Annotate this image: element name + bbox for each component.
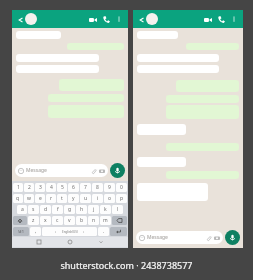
button[interactable]: Received message — [16, 31, 61, 39]
button[interactable]: Contact avatar — [25, 13, 37, 25]
staticText: 7 — [84, 184, 87, 191]
button[interactable]: d — [40, 205, 51, 214]
button[interactable]: Backspace — [112, 216, 127, 225]
staticText: a — [21, 206, 24, 213]
button[interactable]: o — [104, 194, 115, 203]
button[interactable]: , — [30, 227, 41, 236]
staticText: l — [117, 206, 119, 213]
button[interactable]: Record voice message — [110, 163, 125, 178]
button[interactable]: e — [35, 194, 45, 203]
staticText: Message — [147, 234, 168, 241]
button[interactable]: Record voice message — [225, 230, 240, 245]
button[interactable]: Space — [42, 227, 97, 236]
staticText: u — [84, 195, 88, 202]
button[interactable]: a — [17, 205, 27, 214]
staticText: y — [72, 195, 75, 202]
staticText: x — [44, 217, 47, 224]
button[interactable]: More options — [229, 14, 239, 24]
button[interactable]: 7 — [80, 183, 91, 192]
button[interactable]: Back — [137, 15, 146, 24]
button[interactable]: m — [100, 216, 111, 225]
staticText: English(US) — [62, 230, 78, 234]
button[interactable]: c — [52, 216, 63, 225]
button[interactable]: w — [24, 194, 34, 203]
staticText: shutterstock.com · 2438738577 — [60, 259, 193, 271]
button[interactable]: l — [112, 205, 123, 214]
staticText: s — [32, 206, 35, 213]
staticText: v — [68, 217, 71, 224]
button[interactable]: 0 — [116, 183, 127, 192]
button[interactable]: h — [76, 205, 87, 214]
staticText: Message — [26, 167, 47, 174]
button[interactable]: k — [100, 205, 111, 214]
button[interactable]: p — [116, 194, 127, 203]
button[interactable]: q — [13, 194, 23, 203]
staticText: p — [120, 195, 124, 202]
button[interactable]: Received message — [137, 31, 178, 39]
button[interactable]: Voice call — [101, 14, 112, 25]
button[interactable]: 8 — [92, 183, 103, 192]
button[interactable]: Back — [16, 15, 25, 24]
button[interactable]: f — [52, 205, 63, 214]
button[interactable]: t — [57, 194, 67, 203]
staticText: , — [35, 228, 37, 235]
button[interactable]: 2 — [24, 183, 34, 192]
button[interactable]: Recents — [35, 238, 43, 246]
button[interactable]: Video call — [87, 14, 98, 25]
button[interactable]: 6 — [68, 183, 79, 192]
button[interactable]: 3 — [35, 183, 45, 192]
staticText: 6 — [72, 184, 75, 191]
button[interactable]: !#1 — [13, 227, 29, 236]
button[interactable]: Contact avatar — [146, 13, 158, 25]
button[interactable]: u — [80, 194, 91, 203]
button[interactable]: s — [28, 205, 39, 214]
button[interactable]: x — [40, 216, 51, 225]
button[interactable]: 9 — [104, 183, 115, 192]
button[interactable]: i — [92, 194, 103, 203]
staticText: w — [27, 195, 31, 202]
button[interactable]: r — [46, 194, 56, 203]
button[interactable]: v — [64, 216, 75, 225]
button[interactable]: Back — [97, 238, 105, 246]
button[interactable]: Video call — [202, 14, 213, 25]
button[interactable]: 1 — [13, 183, 23, 192]
button[interactable]: Enter — [110, 227, 127, 236]
button[interactable]: . — [98, 227, 109, 236]
button[interactable]: z — [28, 216, 39, 225]
button[interactable]: y — [68, 194, 79, 203]
staticText: n — [92, 217, 96, 224]
staticText: › — [83, 229, 85, 234]
button[interactable]: 5 — [57, 183, 67, 192]
staticText: k — [104, 206, 107, 213]
staticText: f — [57, 206, 59, 213]
button[interactable]: g — [64, 205, 75, 214]
button[interactable]: n — [88, 216, 99, 225]
staticText: t — [61, 195, 63, 202]
button[interactable]: Message — [136, 231, 223, 244]
button[interactable]: Received message — [137, 124, 186, 135]
button[interactable]: Message — [15, 164, 108, 177]
button[interactable]: b — [76, 216, 87, 225]
button[interactable]: Received message — [137, 157, 186, 167]
button[interactable]: Home — [66, 238, 74, 246]
button[interactable]: j — [88, 205, 99, 214]
button[interactable]: Shift — [13, 216, 27, 225]
button[interactable]: More options — [114, 14, 124, 24]
button[interactable]: 4 — [46, 183, 56, 192]
button[interactable]: Voice call — [216, 14, 227, 25]
